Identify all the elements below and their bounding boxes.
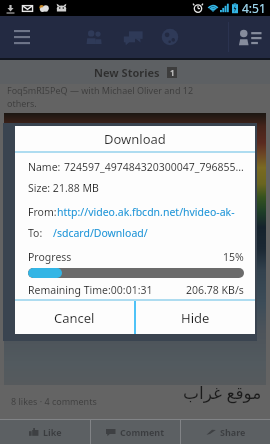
staticText: http://video.ak.fbcdn.net/hvideo-ak-a... [57,205,244,219]
staticText: 4:51 [242,0,266,16]
staticText: From: [28,205,57,219]
staticText: 206.78 KB/s [186,283,244,297]
button[interactable]: Messages [116,16,150,58]
staticText: New Stories [94,65,160,80]
staticText: To: [28,226,43,240]
staticText: Cancel [54,309,95,327]
staticText: Remaining Time:00:01:31 [28,283,153,297]
staticText: Share [220,426,246,438]
button[interactable]: Hide [136,301,255,334]
staticText: Like [43,426,62,438]
staticText: Comment [120,426,165,438]
staticText: Size: 21.88 MB [28,181,99,195]
button[interactable]: Notifications [153,16,187,58]
button[interactable]: Share [181,420,270,444]
button[interactable]: Open navigation menu [0,16,44,58]
staticText: 1 [170,67,175,78]
staticText: others. [7,97,37,109]
button[interactable]: Profile [230,16,270,58]
staticText: Foq5mRI5PeQ — with Michael Oliver and 12 [7,84,194,96]
staticText: موقع غراب [183,381,262,404]
button[interactable]: New Stories [0,60,270,84]
staticText: Name: [28,160,64,174]
button[interactable]: Like [0,420,90,444]
staticText: Progress [28,250,72,264]
staticText: Download [104,130,166,148]
staticText: 8 likes · 4 comments [11,395,97,407]
staticText: 15% [223,250,244,264]
staticText: /sdcard/Download/724597_49748432... [53,226,244,240]
button[interactable]: Friend requests [77,16,111,58]
staticText: 724597_497484320300047_796855... [64,160,244,174]
button[interactable]: Cancel [15,301,134,334]
button[interactable]: Comment [91,420,180,444]
staticText: Hide [181,309,210,327]
